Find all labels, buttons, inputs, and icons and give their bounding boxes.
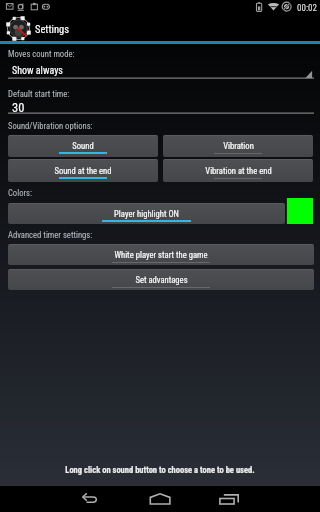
staticText: Colors: <box>8 188 33 198</box>
button[interactable]: Player highlight ON <box>8 203 285 224</box>
staticText: 00:02 <box>297 3 317 14</box>
button[interactable]: Sound <box>8 135 158 157</box>
button[interactable]: Vibration at the end <box>163 159 313 182</box>
other: Chess clock <box>6 16 31 41</box>
staticText: Sound at the end <box>54 166 112 176</box>
staticText: Player highlight ON <box>114 209 179 219</box>
button[interactable]: White player start the game <box>8 244 314 265</box>
button[interactable]: Vibration <box>163 135 313 157</box>
staticText: Default start time: <box>8 89 70 99</box>
staticText: Settings <box>35 23 70 35</box>
staticText: Vibration <box>223 141 254 151</box>
button[interactable]: Set advantages <box>8 269 314 290</box>
staticText: Vibration at the end <box>205 166 272 176</box>
staticText: Long click on sound button to choose a t… <box>0 465 320 475</box>
button[interactable]: Home <box>136 486 184 512</box>
button[interactable]: Recent apps <box>203 486 251 512</box>
button[interactable]: Moves count mode <box>8 60 314 79</box>
button[interactable]: Default start time <box>8 99 314 114</box>
staticText: Sound <box>72 141 94 151</box>
staticText: 30 <box>12 100 25 115</box>
staticText: Set advantages <box>135 275 188 285</box>
staticText: Advanced timer settings: <box>8 230 93 240</box>
button[interactable]: Sound at the end <box>8 159 158 182</box>
button[interactable]: Back <box>65 486 113 512</box>
staticText: Sound/Vibration options: <box>8 121 93 131</box>
staticText: White player start the game <box>114 250 208 260</box>
staticText: Moves count mode: <box>8 49 75 59</box>
staticText: Show always <box>12 65 63 77</box>
